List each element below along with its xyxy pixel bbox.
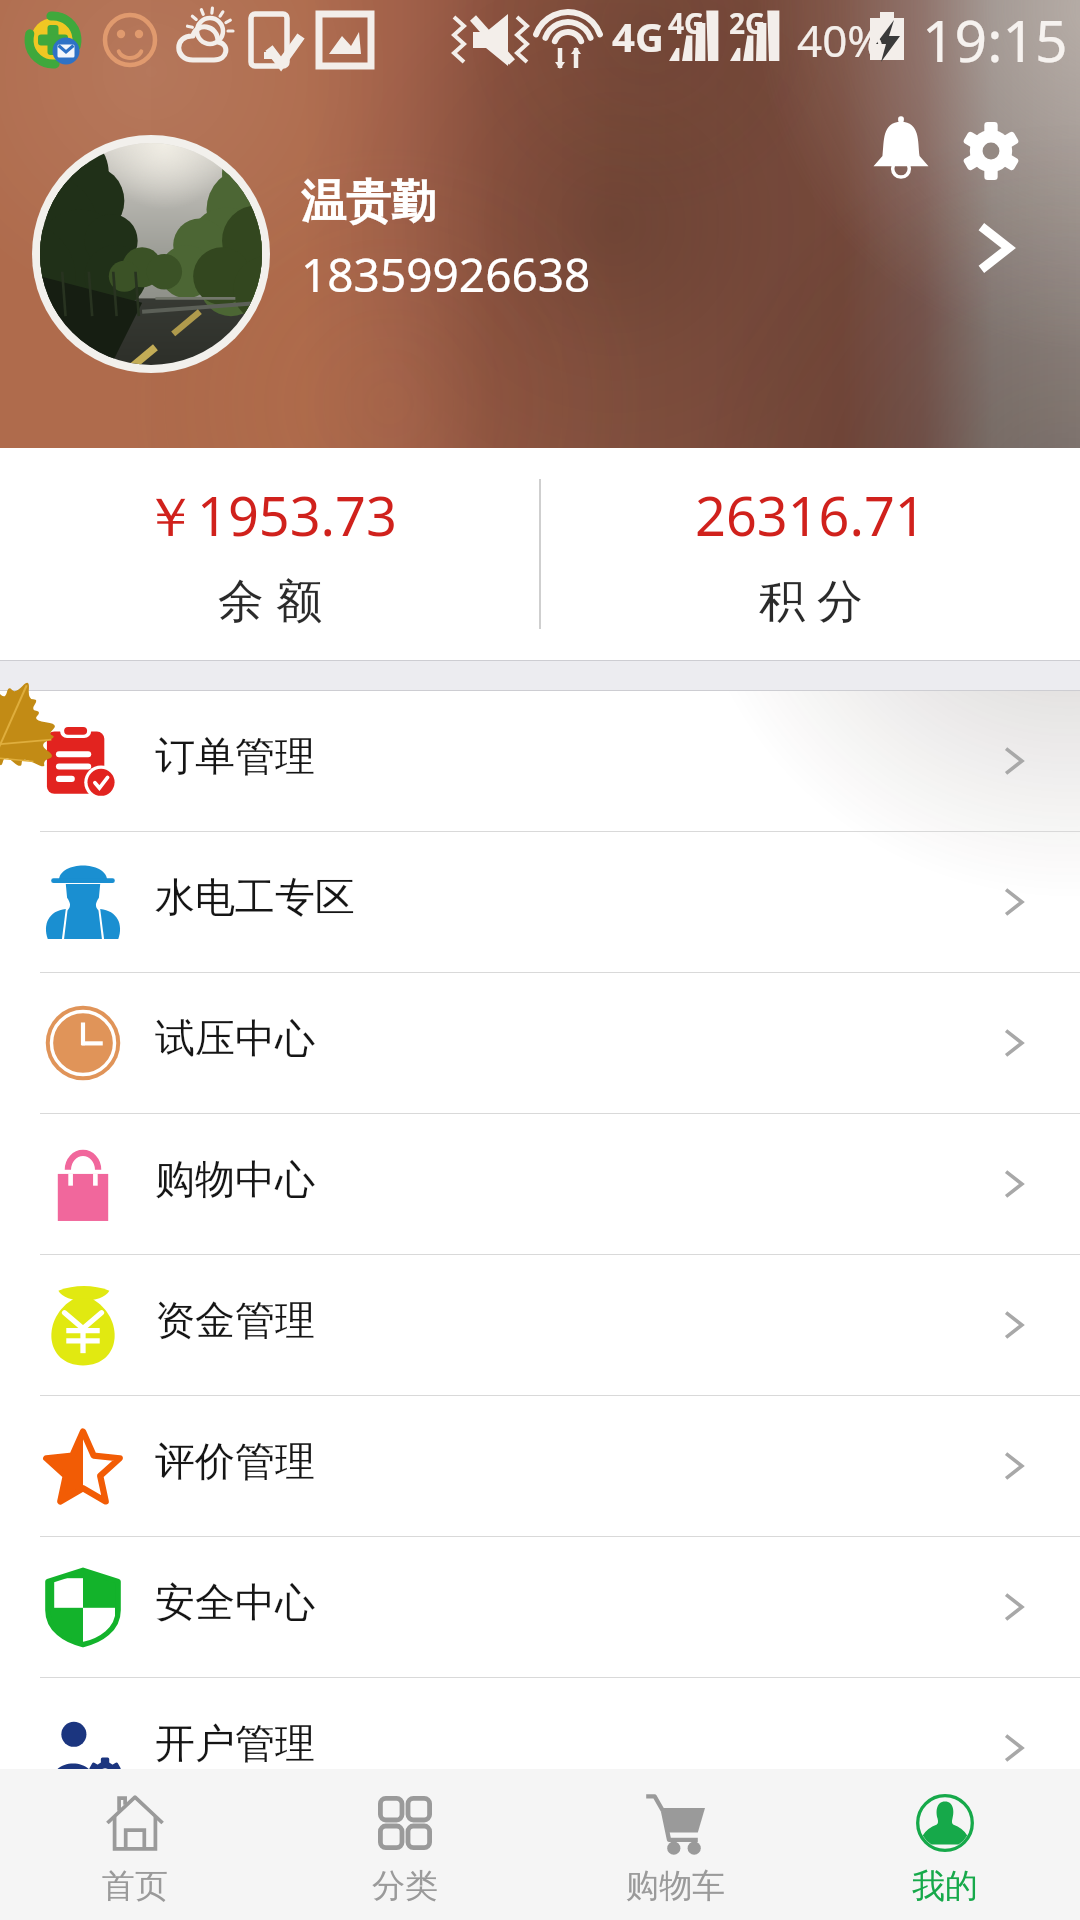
button[interactable]: 购物中心	[0, 1114, 1080, 1255]
button[interactable]: 订单管理	[0, 691, 1080, 832]
staticText: 购物中心	[155, 1154, 315, 1204]
button[interactable]: 水电工专区	[0, 832, 1080, 973]
button[interactable]: Settings	[946, 106, 1036, 196]
staticText: 温贵勤	[301, 174, 436, 231]
button[interactable]: 26316.71	[541, 448, 1080, 660]
button[interactable]: Notifications	[856, 102, 946, 192]
staticText: 首页	[102, 1865, 168, 1907]
button[interactable]: 首页	[0, 1769, 270, 1920]
staticText: 评价管理	[155, 1436, 315, 1486]
staticText: 资金管理	[155, 1295, 315, 1345]
button[interactable]: ￥1953.73	[0, 448, 539, 660]
staticText: 18359926638	[301, 243, 591, 306]
staticText: 4G	[668, 4, 705, 42]
staticText: 4G	[612, 9, 664, 63]
staticText: 试压中心	[155, 1013, 315, 1063]
button[interactable]: 购物车	[540, 1769, 810, 1920]
staticText: 开户管理	[155, 1718, 315, 1768]
button[interactable]: 试压中心	[0, 973, 1080, 1114]
staticText: ￥1953.73	[143, 478, 397, 552]
button[interactable]: 安全中心	[0, 1537, 1080, 1678]
button[interactable]: 资金管理	[0, 1255, 1080, 1396]
staticText: 2G	[729, 4, 766, 42]
button[interactable]: 我的	[810, 1769, 1080, 1920]
staticText: 26316.71	[695, 478, 926, 552]
button[interactable]: Avatar	[40, 143, 262, 365]
staticText: 订单管理	[155, 731, 315, 781]
staticText: 分类	[372, 1865, 438, 1907]
staticText: 积 分	[759, 568, 863, 631]
staticText: 安全中心	[155, 1577, 315, 1627]
staticText: 购物车	[626, 1865, 725, 1907]
staticText: 余 额	[218, 568, 322, 631]
button[interactable]: 开户管理	[0, 1678, 1080, 1819]
button[interactable]: 评价管理	[0, 1396, 1080, 1537]
staticText: 40%	[797, 10, 884, 70]
staticText: 19:15	[922, 1, 1068, 79]
staticText: 水电工专区	[155, 872, 355, 922]
staticText: 我的	[912, 1865, 978, 1907]
button[interactable]: 分类	[270, 1769, 540, 1920]
button[interactable]: Profile detail	[943, 196, 1047, 300]
